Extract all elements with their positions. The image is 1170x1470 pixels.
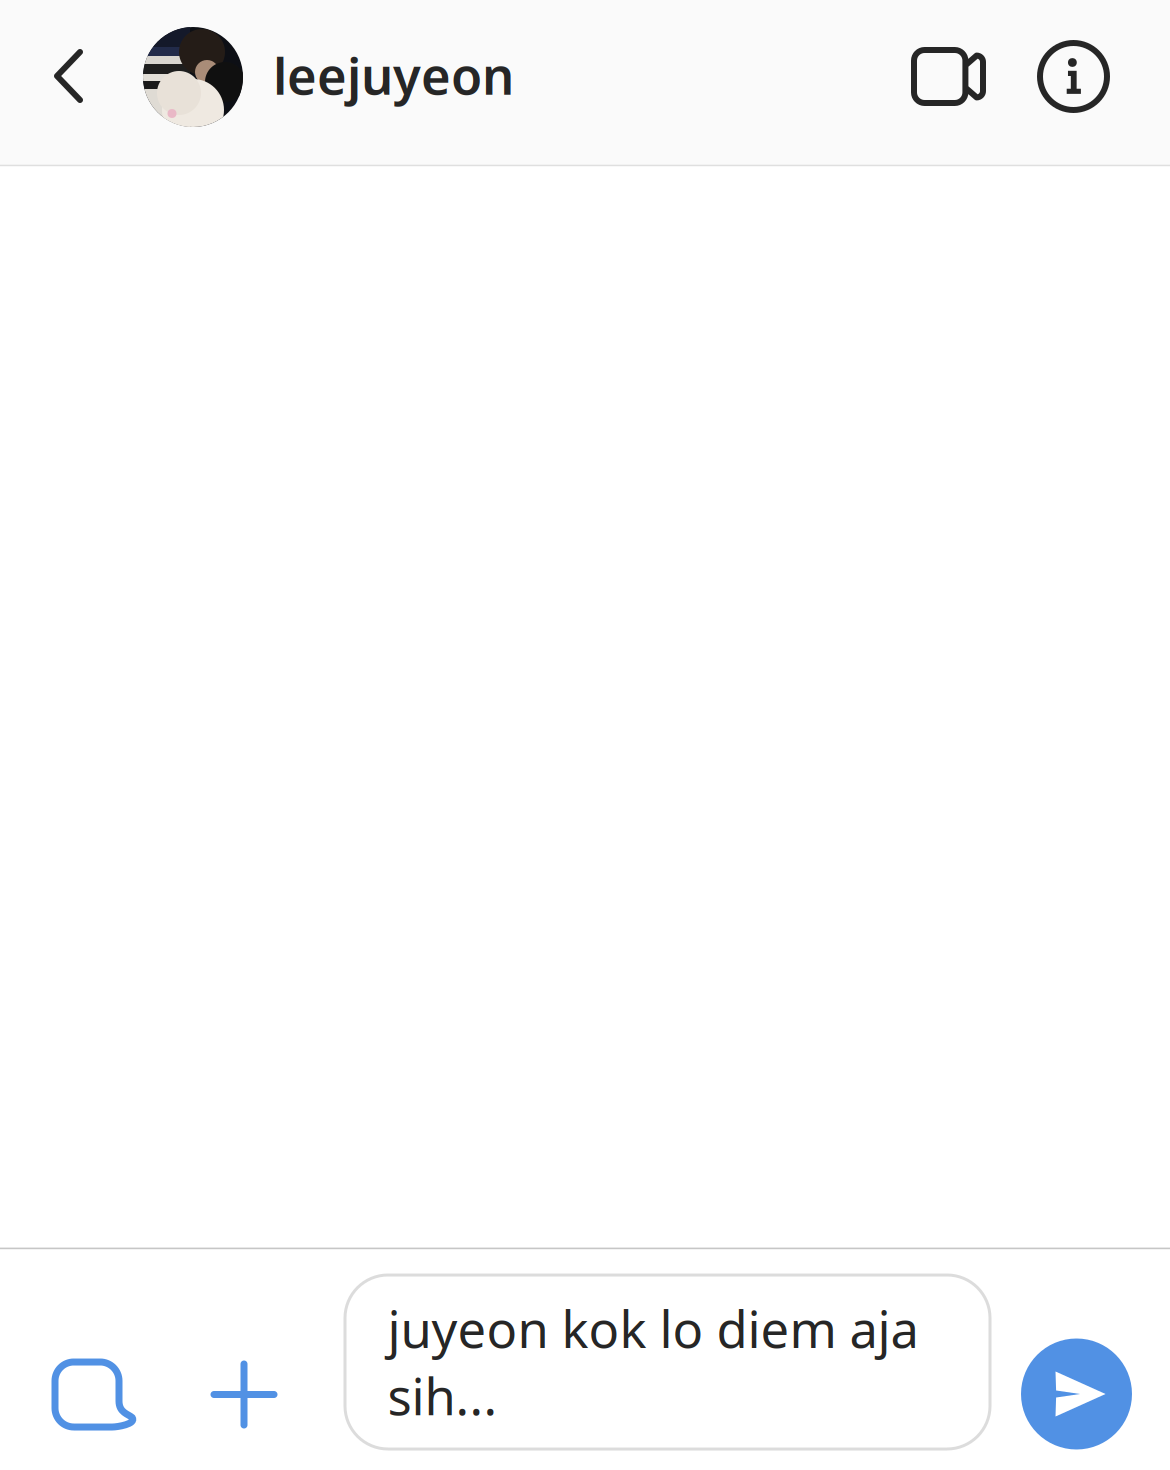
button[interactable]: Back	[34, 24, 103, 128]
staticText: juyeon kok lo diem aja sih...	[387, 1295, 918, 1429]
button[interactable]: Video call	[892, 24, 1005, 129]
button[interactable]: Stickers	[33, 1336, 157, 1453]
staticText: leejuyeon	[273, 41, 514, 109]
button[interactable]: Send	[1021, 1338, 1132, 1450]
button[interactable]: Add	[188, 1338, 300, 1451]
button[interactable]: leejuyeon	[143, 27, 561, 127]
button[interactable]: Conversation information	[1022, 25, 1125, 128]
